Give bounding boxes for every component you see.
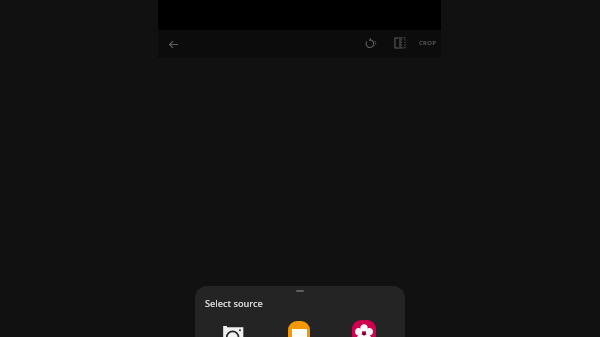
button[interactable]: Flip [390, 33, 410, 53]
button[interactable]: Camera [221, 320, 245, 337]
button[interactable]: Rotate [362, 33, 382, 53]
button[interactable]: CROP [415, 33, 441, 53]
button[interactable]: Back [162, 33, 184, 55]
button[interactable]: Gallery [352, 320, 376, 337]
button[interactable]: Files [287, 320, 311, 337]
staticText: Select source [205, 297, 263, 310]
staticText: CROP [419, 39, 437, 47]
